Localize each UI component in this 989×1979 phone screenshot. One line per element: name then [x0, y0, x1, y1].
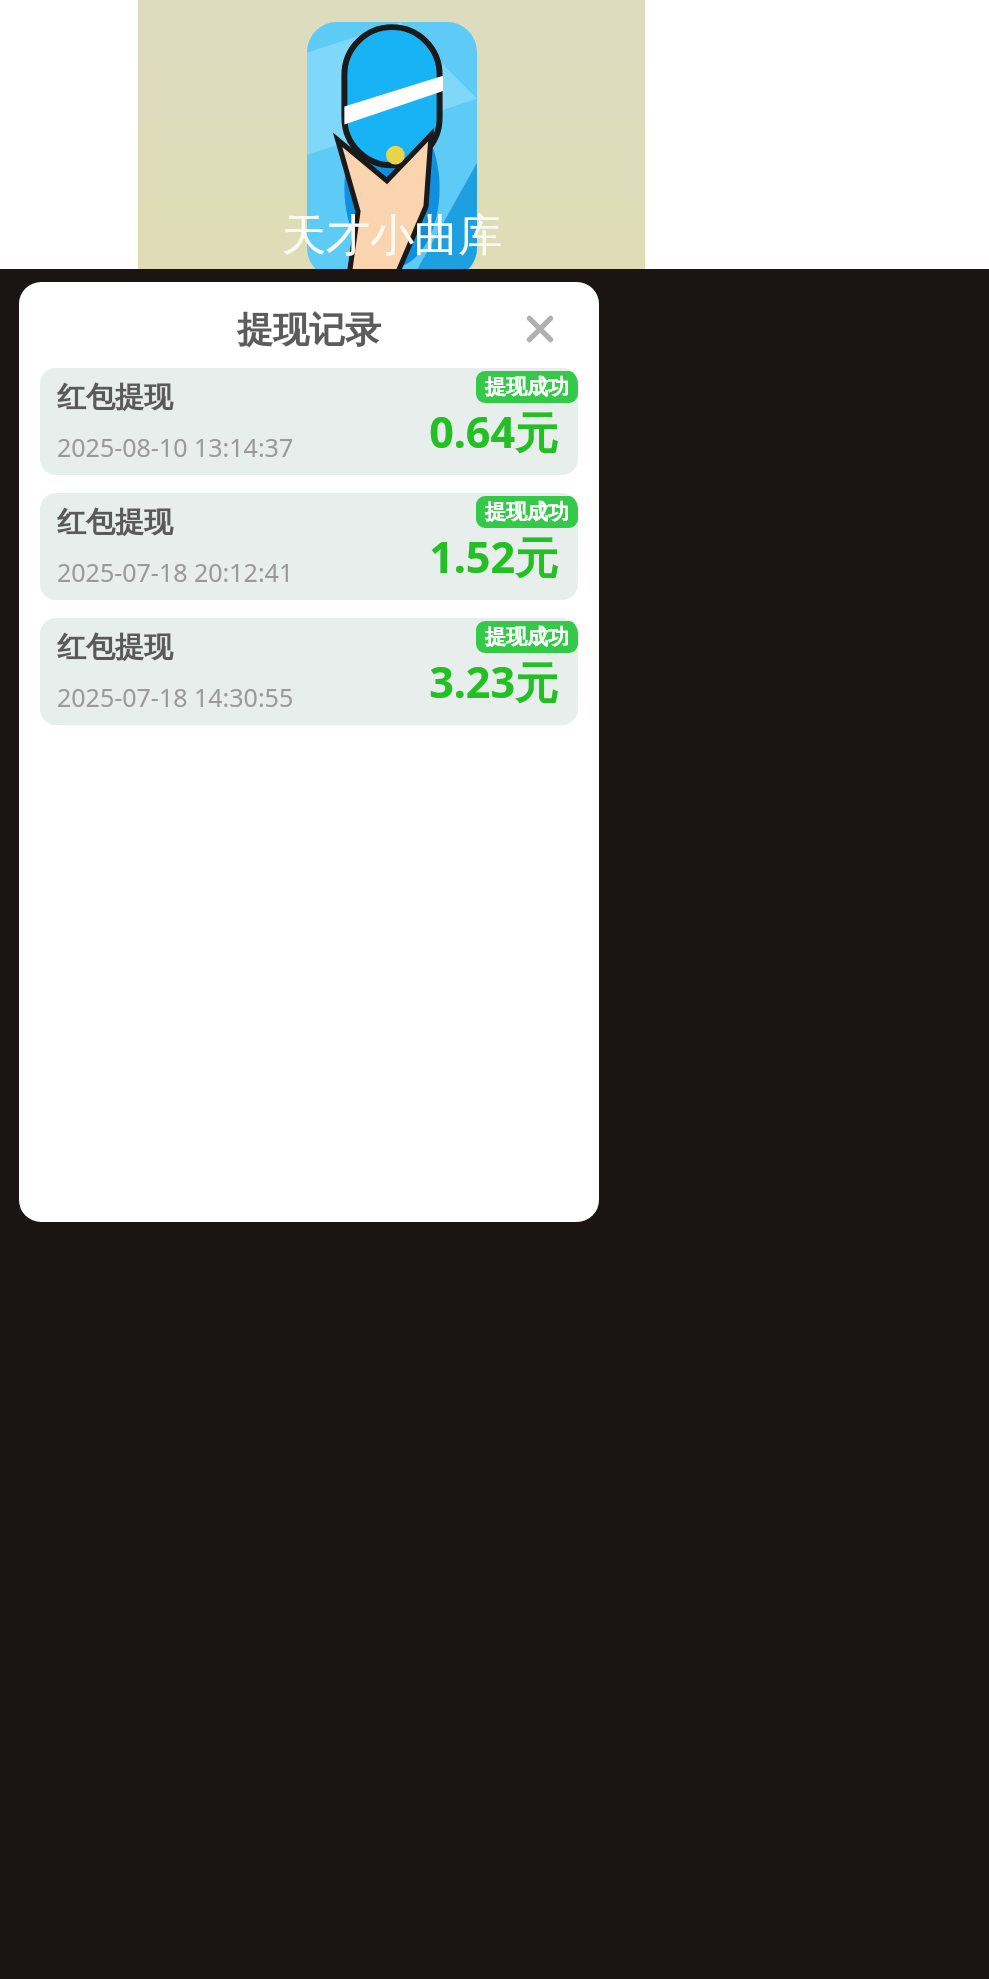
staticText: 天才小曲库 — [282, 208, 502, 263]
staticText: 1.52元 — [429, 527, 558, 586]
staticText: 提现成功 — [485, 499, 569, 525]
staticText: 提现记录 — [237, 307, 381, 352]
staticText: 0.64元 — [429, 402, 558, 461]
staticText: 2025-07-18 14:30:55 — [57, 680, 294, 714]
staticText: 2025-07-18 20:12:41 — [57, 555, 294, 589]
button[interactable]: Close — [517, 306, 563, 352]
staticText: 3.23元 — [429, 652, 558, 711]
staticText: 红包提现 — [57, 379, 173, 416]
button[interactable]: 红包提现 — [40, 368, 578, 475]
staticText: 提现成功 — [485, 374, 569, 400]
button[interactable]: 红包提现 — [40, 618, 578, 725]
staticText: 红包提现 — [57, 629, 173, 666]
staticText: 红包提现 — [57, 504, 173, 541]
staticText: 2025-08-10 13:14:37 — [57, 430, 294, 464]
staticText: 提现成功 — [485, 624, 569, 650]
button[interactable]: 红包提现 — [40, 493, 578, 600]
